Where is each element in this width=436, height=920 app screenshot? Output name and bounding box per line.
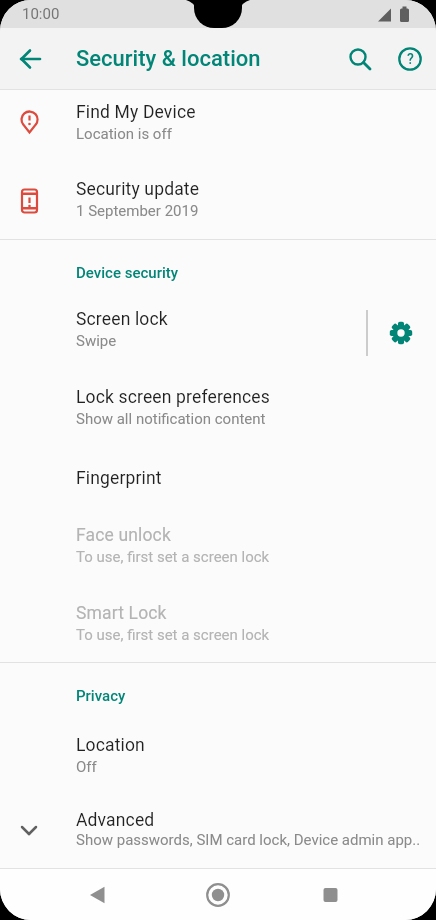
button[interactable]: Find My Device <box>0 83 436 161</box>
staticText: ? <box>407 51 414 67</box>
staticText: Location <box>76 735 145 756</box>
staticText: Device security <box>76 264 179 282</box>
button[interactable]: ? <box>386 35 434 83</box>
staticText: Find My Device <box>76 102 196 123</box>
staticText: Screen lock <box>76 309 168 330</box>
button[interactable] <box>0 28 56 90</box>
staticText: To use, first set a screen lock <box>76 626 270 644</box>
button[interactable] <box>336 35 384 83</box>
button[interactable] <box>74 868 122 920</box>
staticText: 1 September 2019 <box>76 202 199 220</box>
button[interactable]: Screen lock <box>0 290 436 368</box>
button[interactable]: Fingerprint <box>0 450 436 506</box>
staticText: Security & location <box>76 46 261 72</box>
staticText: Lock screen preferences <box>76 387 270 408</box>
button[interactable]: Advanced <box>0 799 436 859</box>
staticText: Show passwords, SIM card lock, Device ad… <box>76 831 421 849</box>
staticText: 10:00 <box>22 5 60 23</box>
button[interactable]: Lock screen preferences <box>0 368 436 446</box>
button[interactable] <box>306 868 354 920</box>
button[interactable]: Face unlock <box>0 506 436 584</box>
staticText: Smart Lock <box>76 603 167 624</box>
staticText: Privacy <box>76 687 126 705</box>
staticText: Advanced <box>76 810 155 831</box>
button[interactable]: Location <box>0 716 436 794</box>
button[interactable] <box>377 309 425 357</box>
button[interactable] <box>194 868 242 920</box>
button[interactable]: Security update <box>0 160 436 238</box>
staticText: Swipe <box>76 332 117 350</box>
staticText: Off <box>76 758 97 776</box>
staticText: Show all notification content <box>76 410 266 428</box>
button[interactable]: Smart Lock <box>0 584 436 662</box>
staticText: Security update <box>76 179 200 200</box>
staticText: Fingerprint <box>76 468 162 489</box>
staticText: Face unlock <box>76 525 171 546</box>
staticText: To use, first set a screen lock <box>76 548 270 566</box>
staticText: Location is off <box>76 125 172 143</box>
